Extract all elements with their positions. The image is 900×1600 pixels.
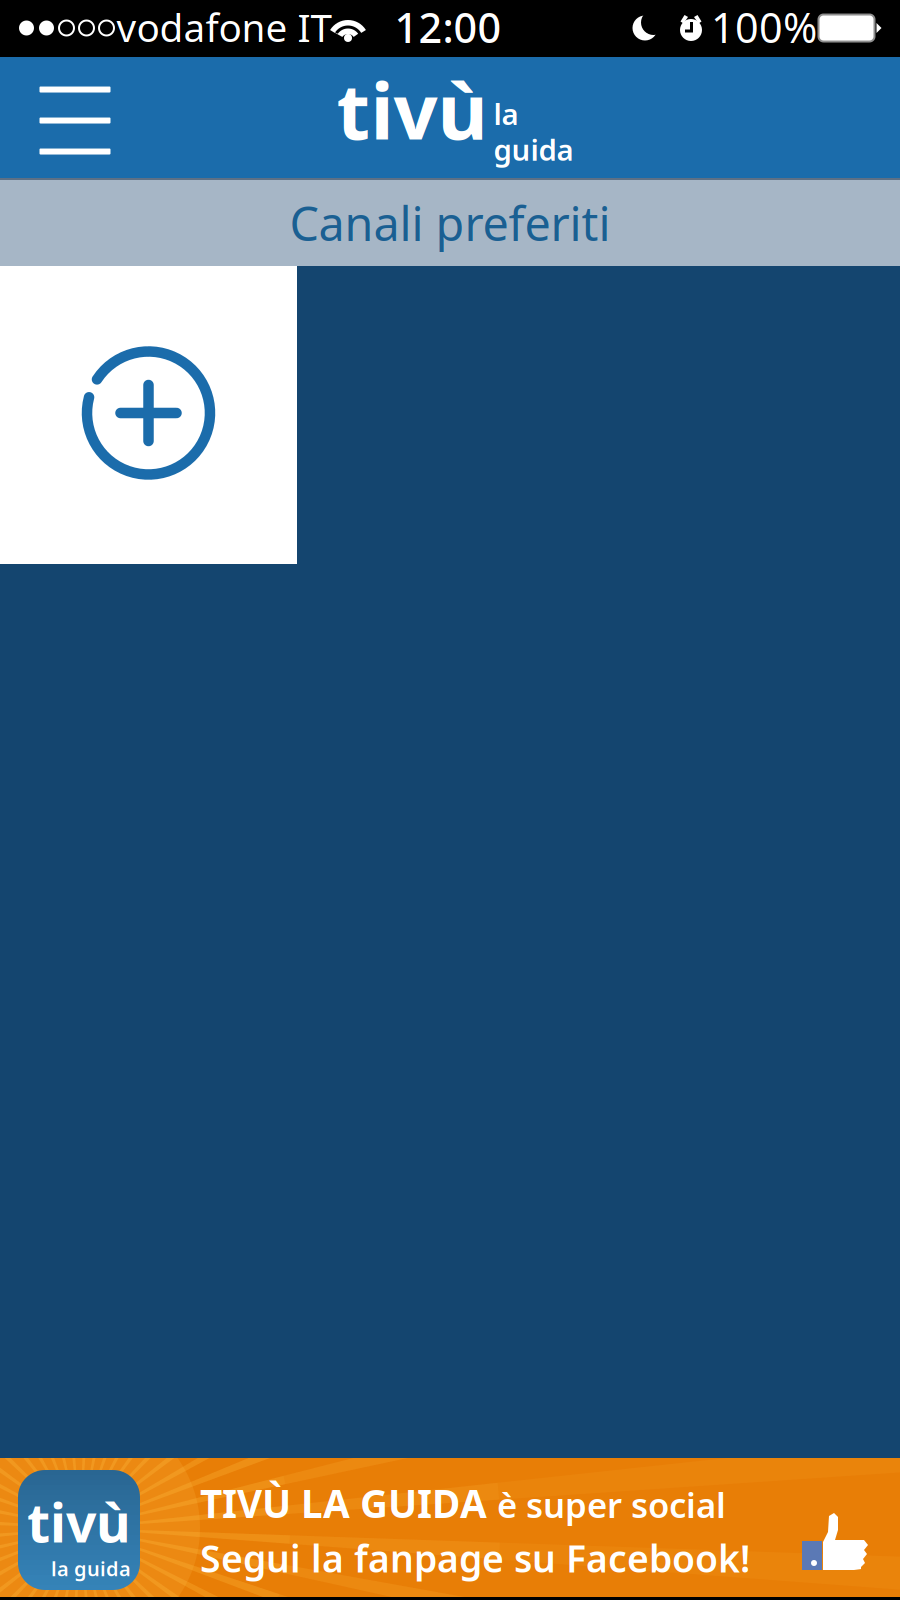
button[interactable]: Aggiungi canale preferito <box>0 266 297 564</box>
staticText: 100% <box>711 0 817 54</box>
staticText: Canali preferiti <box>289 192 610 254</box>
staticText: TIVÙ LA GUIDA <box>200 1477 487 1529</box>
staticText: guida <box>493 130 573 169</box>
staticText: la guida <box>51 1555 131 1582</box>
staticText: vodafone IT <box>116 1 331 53</box>
staticText: Segui la fanpage su Facebook! <box>200 1533 750 1583</box>
staticText: è super social <box>497 1481 726 1527</box>
button[interactable]: Menu <box>0 57 150 177</box>
staticText: 12:00 <box>394 0 501 54</box>
staticText: la <box>493 94 518 133</box>
staticText: tivù <box>27 1486 131 1557</box>
button[interactable]: Segui la fanpage su Facebook <box>0 1458 900 1597</box>
staticText: tivù <box>336 58 487 161</box>
